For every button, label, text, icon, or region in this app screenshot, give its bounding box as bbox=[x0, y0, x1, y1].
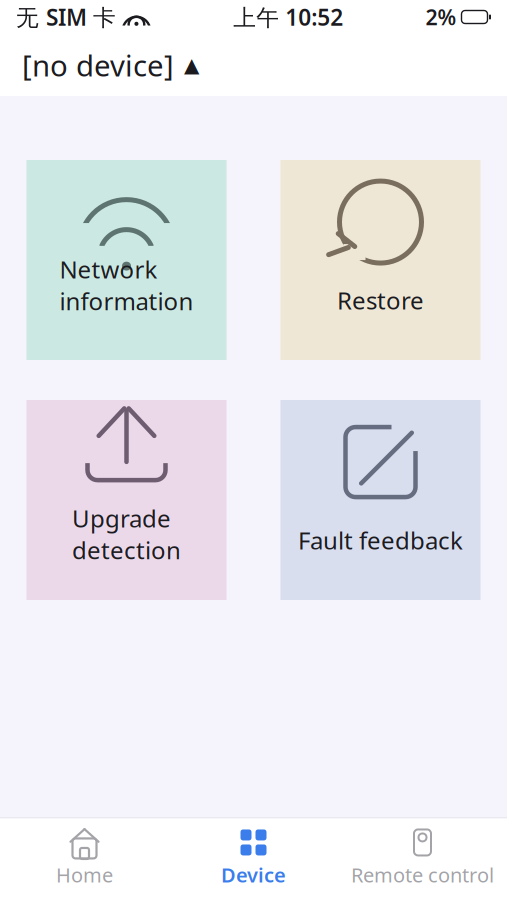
staticText: 无 SIM 卡 bbox=[16, 2, 116, 32]
staticText: 2% bbox=[425, 3, 456, 31]
staticText: Remote control bbox=[351, 861, 494, 888]
button[interactable]: Fault feedback bbox=[280, 400, 480, 600]
staticText: [no device] bbox=[22, 45, 174, 84]
button[interactable]: Restore bbox=[280, 160, 480, 360]
button[interactable]: Network information bbox=[26, 160, 226, 360]
staticText: Restore bbox=[337, 284, 424, 316]
staticText: Network information bbox=[59, 253, 193, 317]
button[interactable]: Home bbox=[0, 818, 169, 900]
button[interactable]: Remote control bbox=[338, 818, 507, 900]
staticText: Device bbox=[221, 861, 286, 888]
staticText: Upgrade detection bbox=[72, 502, 181, 566]
staticText: Home bbox=[56, 861, 113, 888]
staticText: 上午 10:52 bbox=[233, 2, 343, 32]
button[interactable]: Upgrade detection bbox=[26, 400, 226, 600]
button[interactable]: Device bbox=[169, 818, 338, 900]
staticText: Fault feedback bbox=[298, 524, 463, 556]
staticText: ▲ bbox=[184, 54, 199, 76]
button[interactable]: [no device] bbox=[0, 34, 507, 96]
